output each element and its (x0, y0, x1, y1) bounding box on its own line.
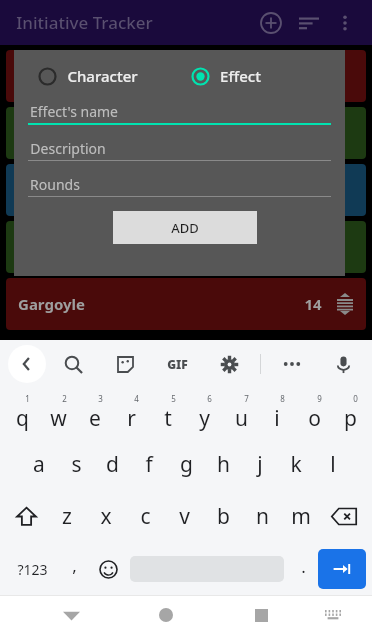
staticText: 4 (134, 393, 139, 404)
staticText: a (33, 450, 45, 479)
staticText: j (257, 450, 263, 479)
staticText: 8 (280, 393, 285, 404)
staticText: , (72, 554, 77, 577)
staticText: 6 (207, 393, 212, 404)
button[interactable] (6, 221, 366, 273)
button[interactable]: Emoji (90, 548, 126, 590)
button[interactable]: d (97, 442, 127, 486)
button[interactable]: ?123 (6, 548, 58, 590)
button[interactable]: Back (8, 345, 46, 383)
staticText: i (274, 404, 280, 433)
button[interactable]: Add (252, 4, 290, 42)
button[interactable]: g (171, 442, 201, 486)
button[interactable]: More options (328, 6, 362, 40)
button[interactable]: h (208, 442, 238, 486)
button[interactable]: Character (38, 62, 191, 90)
staticText: ADD (171, 219, 199, 237)
staticText: Description (30, 139, 106, 158)
button[interactable]: 2 (43, 391, 73, 435)
staticText: k (290, 450, 302, 479)
button[interactable]: c (130, 494, 160, 538)
button[interactable]: 0 (335, 391, 365, 435)
button[interactable]: ADD (113, 211, 257, 244)
button[interactable]: Home (146, 595, 186, 635)
button[interactable]: j (245, 442, 275, 486)
staticText: l (330, 450, 336, 479)
staticText: 7 (244, 393, 249, 404)
button[interactable]: m (286, 494, 316, 538)
staticText: 1 (25, 393, 30, 404)
button[interactable]: Effect (191, 62, 345, 90)
staticText: o (308, 404, 321, 433)
staticText: r (127, 404, 136, 433)
button[interactable]: Switch keyboard (313, 595, 353, 635)
button[interactable]: 6 (189, 391, 219, 435)
staticText: Effect (220, 66, 261, 86)
staticText: Initiative Tracker (16, 11, 153, 34)
staticText: t (164, 404, 172, 433)
button[interactable]: Gargoyle (6, 278, 366, 330)
staticText: d (106, 450, 119, 479)
button[interactable]: Recents (241, 595, 281, 635)
staticText: y (199, 404, 210, 433)
staticText: 0 (353, 393, 358, 404)
button[interactable] (6, 50, 366, 102)
button[interactable]: 8 (262, 391, 292, 435)
staticText: p (344, 404, 357, 433)
button[interactable]: k (281, 442, 311, 486)
staticText: 14 (304, 294, 322, 314)
button[interactable]: v (169, 494, 199, 538)
button[interactable] (6, 107, 366, 159)
staticText: b (217, 502, 230, 531)
staticText: . (301, 555, 306, 578)
button[interactable]: b (208, 494, 238, 538)
button[interactable]: Shift (9, 496, 43, 536)
staticText: c (140, 502, 151, 531)
button[interactable]: 3 (80, 391, 110, 435)
staticText: n (256, 502, 269, 531)
staticText: 3 (98, 393, 103, 404)
staticText: h (217, 450, 230, 479)
staticText: g (180, 450, 193, 479)
button[interactable]: Settings (212, 347, 246, 381)
button[interactable]: GIF (160, 347, 194, 381)
button[interactable]: . (288, 548, 318, 590)
staticText: q (16, 404, 29, 433)
staticText: u (235, 404, 248, 433)
staticText: GIF (167, 356, 188, 372)
button[interactable]: x (91, 494, 121, 538)
staticText: Gargoyle (18, 294, 85, 314)
button[interactable]: f (134, 442, 164, 486)
button[interactable]: Backspace (325, 496, 363, 536)
button[interactable]: 9 (299, 391, 329, 435)
button[interactable]: 4 (116, 391, 146, 435)
staticText: x (100, 502, 112, 531)
button[interactable]: , (58, 548, 90, 590)
button[interactable]: l (318, 442, 348, 486)
button[interactable]: s (61, 442, 91, 486)
staticText: e (89, 404, 101, 433)
staticText: w (50, 404, 67, 433)
staticText: Character (67, 66, 138, 86)
button[interactable]: Search (56, 347, 90, 381)
staticText: ?123 (17, 560, 48, 579)
staticText: m (291, 502, 311, 531)
button[interactable]: 5 (153, 391, 183, 435)
button[interactable]: Voice input (326, 347, 360, 381)
staticText: f (145, 450, 153, 479)
button[interactable]: Sort (290, 4, 328, 42)
button[interactable]: 7 (226, 391, 256, 435)
button[interactable]: Stickers (108, 347, 142, 381)
staticText: v (179, 502, 190, 531)
button[interactable]: More (275, 347, 309, 381)
button[interactable]: 1 (7, 391, 37, 435)
staticText: Rounds (30, 175, 80, 194)
button[interactable] (6, 164, 366, 216)
button[interactable]: Next (318, 549, 366, 589)
staticText: s (71, 450, 82, 479)
button[interactable]: n (247, 494, 277, 538)
button[interactable]: Hide keyboard (51, 595, 91, 635)
button[interactable]: a (24, 442, 54, 486)
button[interactable]: z (52, 494, 82, 538)
